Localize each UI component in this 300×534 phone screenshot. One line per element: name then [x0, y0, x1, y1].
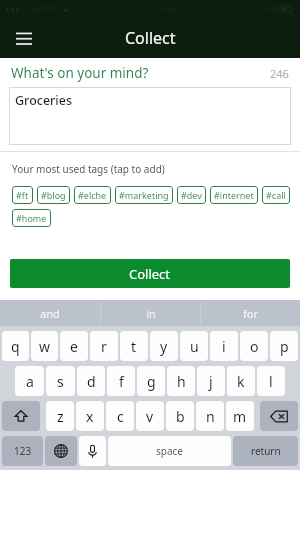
button[interactable]: g — [137, 366, 165, 396]
staticText: Groceries — [15, 92, 72, 109]
staticText: What's on your mind? — [11, 64, 149, 82]
button[interactable]: #call — [262, 186, 290, 204]
button[interactable]: y — [150, 331, 178, 361]
staticText: g — [147, 372, 156, 391]
staticText: m — [233, 407, 247, 426]
staticText: #ft — [16, 189, 29, 201]
staticText: #call — [266, 189, 286, 201]
staticText: n — [206, 407, 215, 426]
staticText: f — [119, 372, 124, 391]
staticText: x — [86, 407, 94, 426]
button[interactable]: a — [15, 366, 44, 396]
button[interactable]: #dev — [177, 186, 206, 204]
staticText: Your most used tags (tap to add) — [12, 162, 165, 176]
staticText: y — [160, 337, 168, 356]
button[interactable]: #internet — [210, 186, 258, 204]
button[interactable]: in — [101, 300, 200, 326]
button[interactable]: Voice input — [79, 436, 106, 466]
staticText: s — [57, 372, 64, 391]
button[interactable]: return — [233, 436, 298, 466]
button[interactable]: Change keyboard language — [45, 436, 77, 466]
staticText: j — [209, 372, 213, 391]
button[interactable]: 123 — [2, 436, 43, 466]
button[interactable]: z — [46, 401, 74, 431]
button[interactable]: and — [0, 300, 100, 326]
staticText: b — [176, 407, 185, 426]
staticText: a — [26, 372, 34, 391]
staticText: o — [250, 337, 259, 356]
staticText: e — [70, 337, 78, 356]
staticText: #marketing — [119, 189, 169, 201]
button[interactable]: t — [120, 331, 148, 361]
staticText: for — [243, 306, 258, 321]
staticText: w — [39, 337, 51, 356]
button[interactable]: h — [167, 366, 195, 396]
button[interactable]: m — [226, 401, 254, 431]
button[interactable]: Shift — [2, 401, 40, 431]
staticText: 123 — [14, 444, 32, 458]
button[interactable]: v — [136, 401, 164, 431]
button[interactable]: i — [210, 331, 238, 361]
staticText: Collect — [125, 27, 176, 49]
button[interactable]: e — [60, 331, 88, 361]
button[interactable]: Collect — [10, 259, 290, 288]
staticText: in — [146, 306, 156, 321]
button[interactable]: s — [46, 366, 75, 396]
staticText: p — [280, 337, 289, 356]
button[interactable]: #home — [12, 209, 51, 227]
button[interactable]: k — [227, 366, 255, 396]
button[interactable]: #blog — [37, 186, 70, 204]
button[interactable]: space — [108, 436, 231, 466]
staticText: #internet — [214, 189, 254, 201]
staticText: JAZZTEL — [34, 4, 60, 14]
staticText: l — [269, 372, 273, 391]
button[interactable]: w — [31, 331, 58, 361]
staticText: #blog — [41, 189, 66, 201]
button[interactable]: l — [257, 366, 285, 396]
button[interactable]: j — [197, 366, 225, 396]
staticText: Collect — [129, 265, 171, 283]
staticText: q — [11, 337, 20, 356]
button[interactable]: o — [240, 331, 268, 361]
staticText: d — [87, 372, 96, 391]
button[interactable]: x — [76, 401, 104, 431]
button[interactable]: n — [196, 401, 224, 431]
staticText: 246 — [270, 66, 289, 81]
button[interactable]: f — [107, 366, 135, 396]
button[interactable]: #ft — [12, 186, 33, 204]
staticText: #home — [16, 212, 47, 224]
button[interactable]: d — [77, 366, 105, 396]
staticText: space — [156, 444, 183, 458]
button[interactable]: for — [201, 300, 300, 326]
button[interactable]: Backspace — [260, 401, 298, 431]
staticText: u — [190, 337, 199, 356]
button[interactable]: u — [180, 331, 208, 361]
staticText: #elche — [78, 189, 107, 201]
staticText: t — [131, 337, 137, 356]
button[interactable]: p — [270, 331, 298, 361]
button[interactable]: Open navigation menu — [8, 22, 40, 54]
staticText: #dev — [181, 189, 202, 201]
button[interactable]: Groceries — [9, 87, 291, 145]
button[interactable]: q — [2, 331, 29, 361]
staticText: z — [57, 407, 64, 426]
staticText: and — [40, 306, 60, 321]
staticText: c — [117, 407, 124, 426]
button[interactable]: #marketing — [115, 186, 173, 204]
staticText: r — [101, 337, 107, 356]
staticText: return — [251, 444, 281, 458]
button[interactable]: r — [90, 331, 118, 361]
button[interactable]: b — [166, 401, 194, 431]
staticText: k — [237, 372, 245, 391]
staticText: v — [146, 407, 154, 426]
staticText: i — [222, 337, 226, 356]
button[interactable]: c — [106, 401, 134, 431]
button[interactable]: #elche — [74, 186, 111, 204]
staticText: h — [177, 372, 186, 391]
